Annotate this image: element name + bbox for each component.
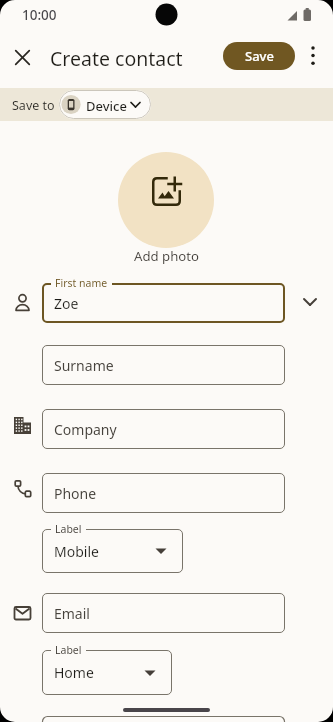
staticText: Label [55,522,82,536]
button[interactable] [118,152,214,248]
button[interactable]: Home [42,650,172,695]
staticText: 10:00 [22,6,57,24]
staticText: Add photo [0,247,333,265]
button[interactable]: Zoe [42,283,285,323]
staticText: Phone [54,484,97,503]
staticText: Mobile [54,542,99,561]
staticText: Label [55,643,82,657]
button[interactable]: Save [223,42,295,70]
staticText: Save [245,47,274,65]
button[interactable] [300,42,326,68]
staticText: First name [55,276,108,290]
button[interactable] [296,288,324,316]
button[interactable]: Surname [42,345,285,385]
button[interactable]: Email [42,593,285,633]
staticText: Create contact [50,45,183,72]
staticText: Home [54,663,94,682]
staticText: Surname [54,356,114,375]
button[interactable]: Company [42,409,285,449]
staticText: Email [54,604,90,623]
button[interactable]: Mobile [42,529,183,573]
staticText: Zoe [54,294,79,313]
button[interactable]: Device [59,90,151,119]
staticText: Device [86,97,127,115]
button[interactable] [8,43,37,72]
button[interactable]: Phone [42,473,285,513]
staticText: Save to [12,97,55,114]
staticText: Company [54,420,117,439]
